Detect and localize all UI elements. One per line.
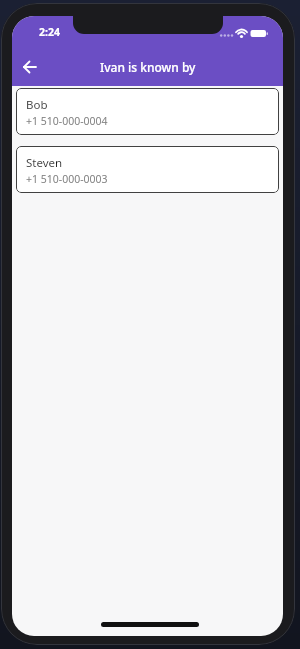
staticText: Steven xyxy=(26,155,63,171)
button[interactable] xyxy=(17,54,43,80)
button[interactable]: Steven xyxy=(16,146,279,193)
button[interactable]: Bob xyxy=(16,88,279,135)
staticText: +1 510-000-0003 xyxy=(26,172,108,186)
staticText: Ivan is known by xyxy=(100,59,196,75)
staticText: 2:24 xyxy=(39,25,60,39)
staticText: +1 510-000-0004 xyxy=(26,114,108,128)
staticText: Bob xyxy=(26,97,48,113)
